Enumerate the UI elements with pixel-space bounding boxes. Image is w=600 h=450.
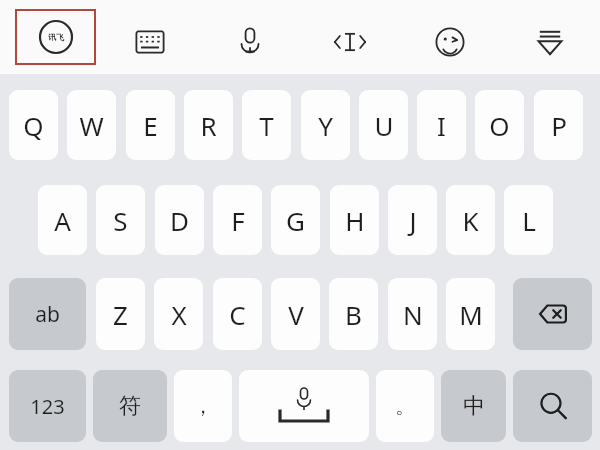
button[interactable]: C [213, 278, 262, 350]
button[interactable]: ab [9, 278, 86, 350]
button[interactable]: S [96, 185, 145, 255]
button[interactable]: L [504, 185, 553, 255]
staticText: 中 [463, 392, 485, 420]
button[interactable]: Emoji [428, 20, 472, 64]
button[interactable]: O [475, 90, 524, 160]
staticText: G [286, 203, 305, 238]
button[interactable]: 123 [9, 370, 86, 442]
button[interactable]: Y [301, 90, 350, 160]
staticText: J [409, 203, 417, 238]
staticText: D [170, 203, 189, 238]
button[interactable]: Search [513, 370, 592, 442]
button[interactable]: P [534, 90, 583, 160]
button[interactable]: A [38, 185, 87, 255]
staticText: 讯飞 [48, 32, 64, 42]
button[interactable]: H [330, 185, 379, 255]
staticText: O [489, 108, 510, 143]
staticText: Q [23, 108, 44, 143]
staticText: M [459, 297, 483, 332]
button[interactable]: Z [96, 278, 145, 350]
staticText: 123 [30, 393, 65, 420]
button[interactable]: Voice input [228, 20, 272, 64]
staticText: F [231, 203, 245, 238]
staticText: S [113, 203, 128, 238]
button[interactable]: W [67, 90, 116, 160]
staticText: H [345, 203, 365, 238]
button[interactable]: Keyboard layout [128, 20, 172, 64]
staticText: P [551, 108, 567, 143]
button[interactable]: B [329, 278, 378, 350]
staticText: B [345, 297, 362, 332]
staticText: 符 [119, 392, 141, 420]
staticText: U [374, 108, 394, 143]
staticText: T [259, 108, 274, 143]
button[interactable]: J [388, 185, 437, 255]
staticText: E [143, 108, 158, 143]
staticText: C [229, 297, 246, 332]
button[interactable]: U [359, 90, 408, 160]
button[interactable]: E [126, 90, 175, 160]
button[interactable]: Space [239, 370, 369, 442]
button[interactable]: I [417, 90, 466, 160]
staticText: W [79, 108, 104, 143]
button[interactable]: M [446, 278, 495, 350]
staticText: L [522, 203, 536, 238]
button[interactable]: Backspace [513, 278, 592, 350]
button[interactable]: X [154, 278, 203, 350]
staticText: K [462, 203, 479, 238]
button[interactable]: ， [174, 370, 232, 442]
button[interactable]: Q [9, 90, 58, 160]
staticText: A [54, 203, 71, 238]
button[interactable]: R [184, 90, 233, 160]
staticText: Z [113, 297, 128, 332]
staticText: Y [318, 108, 333, 143]
staticText: ， [193, 394, 213, 419]
staticText: X [171, 297, 187, 332]
button[interactable]: 。 [376, 370, 434, 442]
button[interactable]: iFlytek input method [16, 10, 95, 64]
staticText: I [437, 108, 446, 143]
staticText: R [200, 108, 217, 143]
button[interactable]: G [271, 185, 320, 255]
button[interactable]: N [388, 278, 437, 350]
button[interactable]: V [271, 278, 320, 350]
button[interactable]: Edit cursor [328, 20, 372, 64]
staticText: ab [35, 300, 60, 329]
button[interactable]: Hide keyboard [528, 20, 572, 64]
button[interactable]: T [242, 90, 291, 160]
staticText: N [403, 297, 423, 332]
staticText: V [288, 297, 304, 332]
button[interactable]: 中 [441, 370, 506, 442]
button[interactable]: F [213, 185, 262, 255]
button[interactable]: D [155, 185, 204, 255]
button[interactable]: 符 [93, 370, 167, 442]
button[interactable]: K [446, 185, 495, 255]
staticText: 。 [395, 394, 415, 419]
